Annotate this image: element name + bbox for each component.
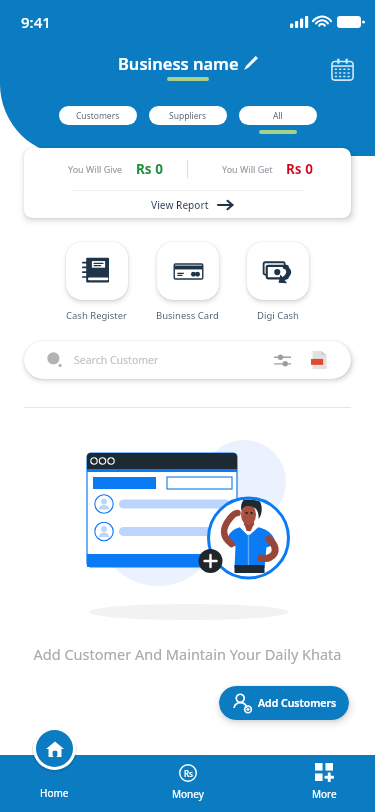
staticText: Cash Register	[66, 309, 128, 322]
staticText: Search Customer	[74, 353, 159, 367]
staticText: Digi Cash	[257, 309, 299, 322]
button[interactable]: Calendar	[327, 54, 357, 84]
staticText: Rs	[184, 768, 193, 779]
staticText: Suppliers	[169, 110, 207, 122]
button[interactable]: Home	[22, 726, 87, 806]
button[interactable]: Add Customers	[219, 686, 349, 720]
staticText: More	[312, 787, 337, 801]
button[interactable]: Business name	[118, 52, 258, 81]
staticText: Money	[172, 787, 204, 801]
button[interactable]: View Report	[24, 191, 351, 218]
staticText: You Will Give	[68, 163, 123, 175]
staticText: Customers	[76, 110, 120, 122]
staticText: Business Card	[156, 309, 219, 322]
staticText: Business name	[118, 52, 239, 74]
button[interactable]: Customers	[59, 106, 137, 125]
button[interactable]: All	[239, 106, 317, 125]
button[interactable]: More	[291, 757, 357, 809]
staticText: 9:41	[21, 12, 51, 32]
button[interactable]: Rs	[155, 757, 221, 809]
button[interactable]: Suppliers	[149, 106, 227, 125]
staticText: Add Customers	[258, 696, 337, 710]
staticText: All	[273, 110, 283, 122]
button[interactable]: Digi Cash	[247, 242, 309, 322]
button[interactable]: Business Card	[156, 242, 219, 322]
staticText: View Report	[151, 198, 209, 212]
staticText: Home	[40, 786, 69, 800]
staticText: You Will Get	[222, 163, 273, 175]
button[interactable]: Search Customer	[24, 341, 351, 379]
staticText: Rs 0	[136, 160, 163, 178]
button[interactable]: Export PDF	[311, 351, 327, 369]
staticText: Rs 0	[286, 160, 313, 178]
button[interactable]: Filter	[274, 353, 291, 368]
staticText: Add Customer And Maintain Your Daily Kha…	[0, 644, 375, 664]
button[interactable]: Cash Register	[66, 242, 128, 322]
